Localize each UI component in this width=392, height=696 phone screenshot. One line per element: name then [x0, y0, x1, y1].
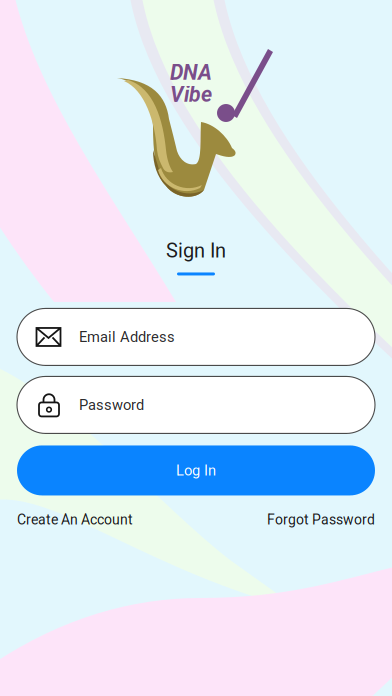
staticText: Log In [176, 462, 216, 479]
button[interactable]: Create An Account [17, 511, 133, 528]
staticText: Forgot Password [267, 511, 375, 528]
staticText: Create An Account [17, 511, 133, 528]
staticText: Password [79, 396, 144, 413]
staticText: Email Address [79, 328, 175, 345]
staticText: Sign In [166, 239, 226, 262]
staticText: Vibe [170, 82, 212, 107]
button[interactable]: Forgot Password [267, 511, 375, 528]
staticText: DNA [170, 60, 212, 85]
button[interactable]: Log In [17, 445, 375, 495]
